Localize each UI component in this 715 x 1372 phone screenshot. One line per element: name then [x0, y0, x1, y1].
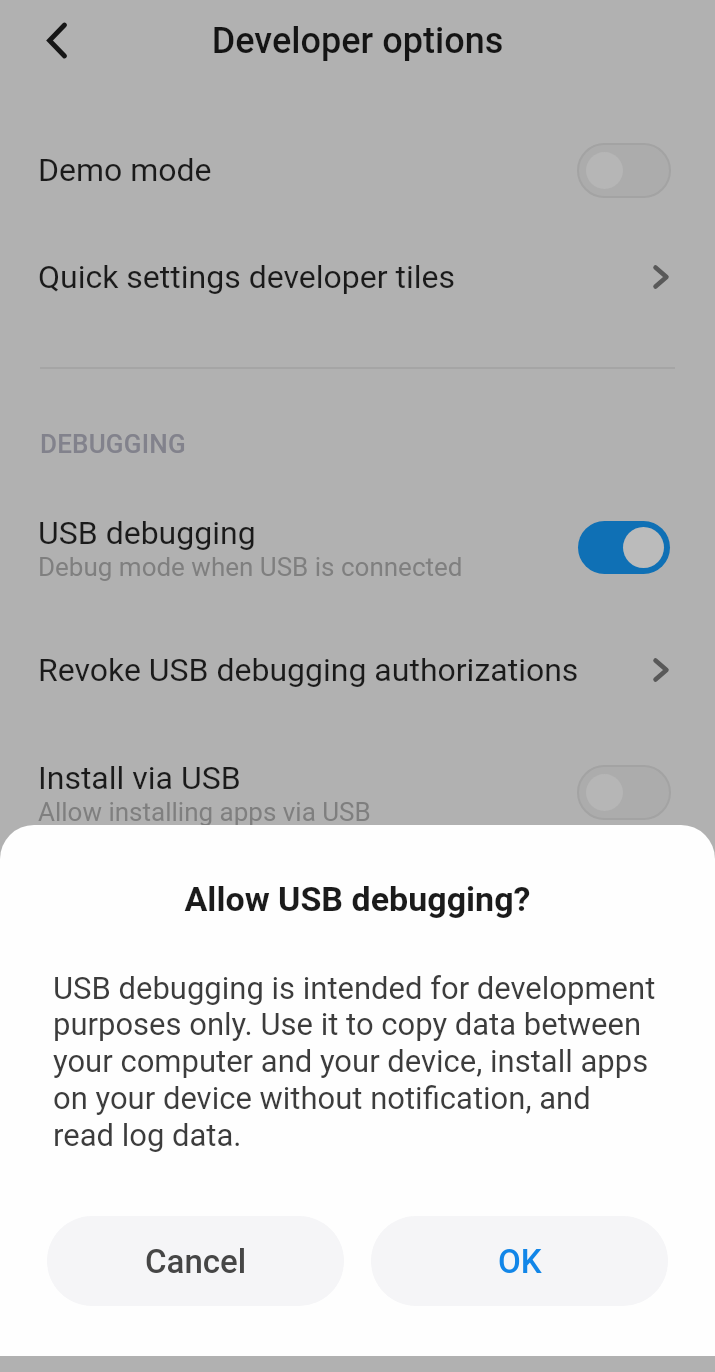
button[interactable]: [578, 521, 670, 574]
button[interactable]: Install via USB: [0, 745, 715, 840]
staticText: Revoke USB debugging authorizations: [38, 651, 579, 689]
button[interactable]: Demo mode: [0, 130, 715, 210]
staticText: Install via USB: [38, 759, 241, 797]
button[interactable]: [578, 144, 670, 197]
button[interactable]: USB debugging: [0, 500, 715, 595]
button[interactable]: Quick settings developer tiles: [0, 237, 715, 317]
staticText: Developer options: [0, 20, 715, 62]
staticText: USB debugging is intended for developmen…: [53, 970, 656, 1153]
staticText: Demo mode: [38, 151, 212, 189]
staticText: DEBUGGING: [40, 429, 186, 459]
button[interactable]: [578, 766, 670, 819]
staticText: Allow USB debugging?: [0, 879, 715, 919]
staticText: Quick settings developer tiles: [38, 258, 455, 296]
staticText: Debug mode when USB is connected: [38, 552, 463, 582]
button[interactable]: OK: [371, 1216, 668, 1306]
staticText: Cancel: [145, 1242, 247, 1281]
staticText: USB debugging: [38, 514, 256, 552]
button[interactable]: [40, 17, 74, 65]
button[interactable]: Revoke USB debugging authorizations: [0, 630, 715, 710]
staticText: OK: [498, 1242, 542, 1281]
staticText: Allow installing apps via USB: [38, 797, 371, 827]
button[interactable]: Cancel: [47, 1216, 344, 1306]
